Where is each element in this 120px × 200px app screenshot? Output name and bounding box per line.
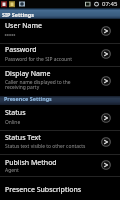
button[interactable]	[0, 43, 120, 67]
button[interactable]: Open	[101, 137, 111, 147]
staticText: Publish Method	[5, 158, 91, 168]
staticText: Presence Subscriptions	[5, 185, 82, 195]
staticText: Caller name displayed to the receiving p…	[5, 79, 91, 91]
button[interactable]	[0, 19, 120, 43]
staticText: User Name	[5, 21, 91, 31]
staticText: Agent	[5, 167, 91, 174]
staticText: Online	[5, 119, 91, 126]
button[interactable]: Open	[101, 76, 111, 86]
button[interactable]: Open	[101, 113, 111, 123]
staticText: Password for the SIP account	[5, 56, 91, 63]
staticText: Display Name	[5, 69, 91, 79]
staticText: SIP Settings	[2, 11, 34, 18]
staticText: Status	[5, 108, 91, 118]
button[interactable]	[0, 176, 120, 200]
staticText: Status text visible to other contacts	[5, 143, 91, 150]
button[interactable]: Open	[101, 160, 111, 170]
button[interactable]	[0, 106, 120, 131]
button[interactable]	[0, 130, 120, 154]
staticText: Password	[5, 45, 91, 55]
staticText: Status Text	[5, 133, 91, 143]
button[interactable]	[0, 154, 120, 176]
staticText: 07:45	[102, 0, 118, 8]
staticText: Presence Settings	[4, 95, 52, 102]
button[interactable]	[0, 66, 120, 95]
button[interactable]: Open	[101, 26, 111, 36]
button[interactable]: Open	[101, 49, 111, 59]
